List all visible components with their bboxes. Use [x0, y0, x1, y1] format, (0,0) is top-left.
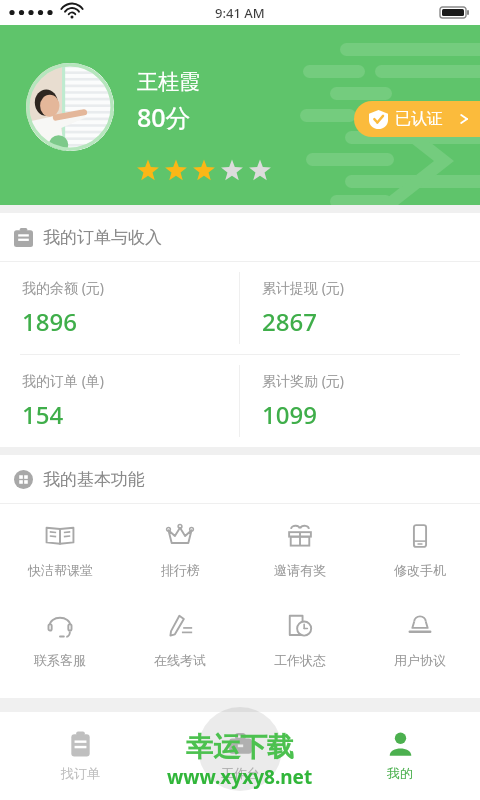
button[interactable]: 联系客服 [0, 594, 120, 684]
staticText: 我的订单与收入 [43, 227, 162, 248]
staticText: 幸运下载 [186, 730, 294, 764]
staticText: 9:41 AM [215, 4, 265, 22]
staticText: 找订单 [61, 765, 100, 781]
staticText: 排行榜 [161, 562, 200, 578]
button[interactable]: 排行榜 [120, 504, 240, 594]
button[interactable]: 邀请有奖 [240, 504, 360, 594]
staticText: 王桂霞 [137, 69, 200, 95]
button[interactable]: 修改手机 [360, 504, 480, 594]
staticText: 快洁帮课堂 [28, 562, 93, 578]
button[interactable]: 工作状态 [240, 594, 360, 684]
staticText: 联系客服 [34, 652, 86, 668]
button[interactable]: 累计提现 (元) [240, 262, 480, 354]
button[interactable]: 我的订单 (单) [0, 355, 239, 447]
staticText: 工作台 [221, 765, 260, 781]
staticText: 80分 [137, 100, 191, 134]
staticText: 1099 [262, 398, 317, 431]
staticText: 我的余额 (元) [22, 278, 105, 297]
staticText: 2867 [262, 305, 317, 338]
staticText: 累计提现 (元) [262, 278, 345, 297]
staticText: 在线考试 [154, 652, 206, 668]
staticText: 我的基本功能 [43, 469, 145, 490]
button[interactable]: 工作台 [160, 712, 320, 800]
staticText: 我的订单 (单) [22, 371, 105, 390]
button[interactable]: 累计奖励 (元) [240, 355, 480, 447]
staticText: 累计奖励 (元) [262, 371, 345, 390]
staticText: 我的 [387, 765, 413, 781]
button[interactable]: 我的 [320, 712, 480, 800]
staticText: 已认证 [395, 109, 443, 129]
staticText: 154 [22, 398, 64, 431]
staticText: 用户协议 [394, 652, 446, 668]
button[interactable]: 已认证 [354, 101, 480, 137]
button[interactable]: 用户协议 [360, 594, 480, 684]
staticText: 邀请有奖 [274, 562, 326, 578]
button[interactable]: 快洁帮课堂 [0, 504, 120, 594]
staticText: 工作状态 [274, 652, 326, 668]
button[interactable]: Profile photo [26, 63, 114, 151]
staticText: www.xyxy8.net [167, 764, 313, 790]
staticText: 修改手机 [394, 562, 446, 578]
button[interactable]: 找订单 [0, 712, 160, 800]
staticText: 1896 [22, 305, 77, 338]
button[interactable]: 我的余额 (元) [0, 262, 239, 354]
button[interactable]: 在线考试 [120, 594, 240, 684]
